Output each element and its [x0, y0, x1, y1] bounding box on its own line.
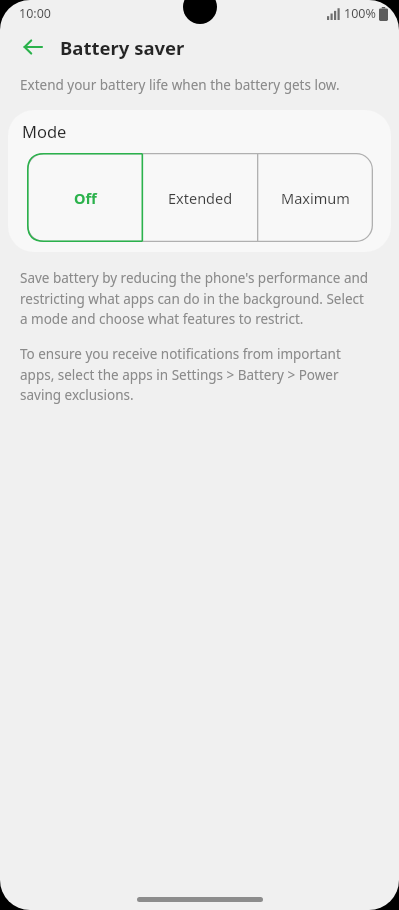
button[interactable]: Extended — [143, 153, 258, 242]
staticText: Battery saver — [60, 35, 185, 60]
staticText: To ensure you receive notifications from… — [20, 345, 375, 404]
button[interactable]: Maximum — [258, 153, 373, 242]
staticText: Off — [74, 188, 97, 208]
button[interactable]: Off — [27, 153, 143, 242]
staticText: Extend your battery life when the batter… — [20, 76, 340, 94]
staticText: 10:00 — [19, 5, 51, 22]
staticText: Save battery by reducing the phone's per… — [20, 269, 369, 328]
staticText: 100% — [344, 5, 376, 22]
staticText: Maximum — [281, 188, 350, 208]
button[interactable]: Back — [18, 32, 48, 62]
staticText: Mode — [22, 120, 67, 142]
staticText: Extended — [168, 188, 233, 208]
